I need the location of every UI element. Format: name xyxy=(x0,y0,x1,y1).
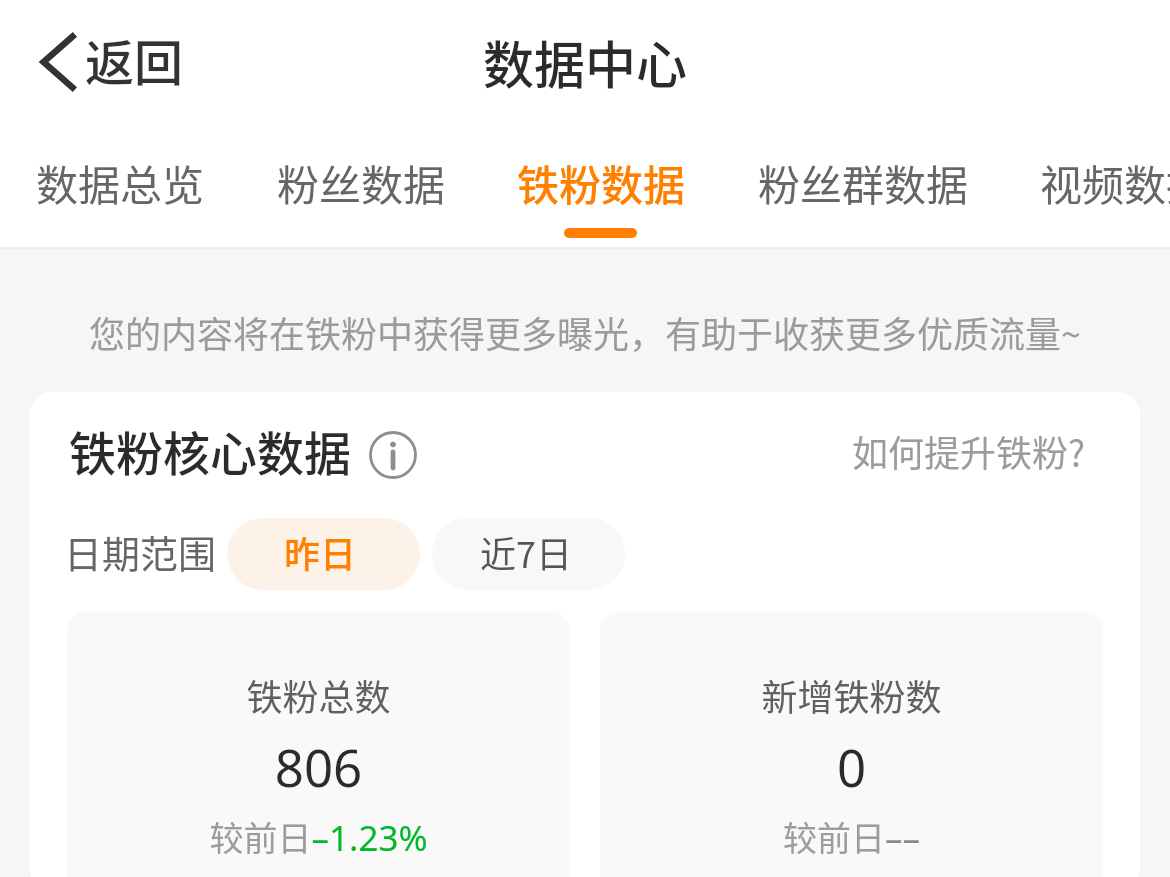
staticText: 806 xyxy=(67,732,570,801)
button[interactable]: 数据总览 xyxy=(20,136,221,229)
staticText: 新增铁粉数 xyxy=(600,669,1103,721)
staticText: 较前日–1.23% xyxy=(67,812,570,862)
staticText: 视频数据 xyxy=(1040,152,1170,213)
button[interactable]: 昨日 xyxy=(227,518,420,590)
button[interactable]: 新增铁粉数 xyxy=(600,612,1103,877)
staticText: 您的内容将在铁粉中获得更多曝光，有助于收获更多优质流量~ xyxy=(0,306,1170,358)
staticText: 昨日 xyxy=(284,526,357,578)
button[interactable]: 如何提升铁粉? xyxy=(848,425,1090,477)
staticText: 0 xyxy=(600,732,1103,801)
button[interactable]: 铁粉总数 xyxy=(67,612,570,877)
staticText: 铁粉数据 xyxy=(517,152,686,213)
button[interactable]: 粉丝群数据 xyxy=(742,136,985,229)
staticText: 日期范围 xyxy=(64,524,217,579)
staticText: 粉丝群数据 xyxy=(758,152,969,213)
staticText: 较前日–– xyxy=(600,812,1103,862)
button[interactable]: 视频数据 xyxy=(1024,136,1170,229)
staticText: 数据总览 xyxy=(36,152,205,213)
button[interactable]: 说明 xyxy=(369,431,417,479)
staticText: 铁粉核心数据 xyxy=(69,416,351,484)
staticText: 铁粉总数 xyxy=(67,669,570,721)
button[interactable]: 返回 xyxy=(24,14,196,106)
staticText: 近7日 xyxy=(480,526,572,578)
staticText: 粉丝数据 xyxy=(277,152,446,213)
staticText: 返回 xyxy=(85,24,184,95)
button[interactable]: 近7日 xyxy=(432,518,625,590)
button[interactable]: 粉丝数据 xyxy=(261,136,462,229)
button[interactable]: 铁粉数据 xyxy=(501,136,702,229)
staticText: 数据中心 xyxy=(483,25,688,99)
